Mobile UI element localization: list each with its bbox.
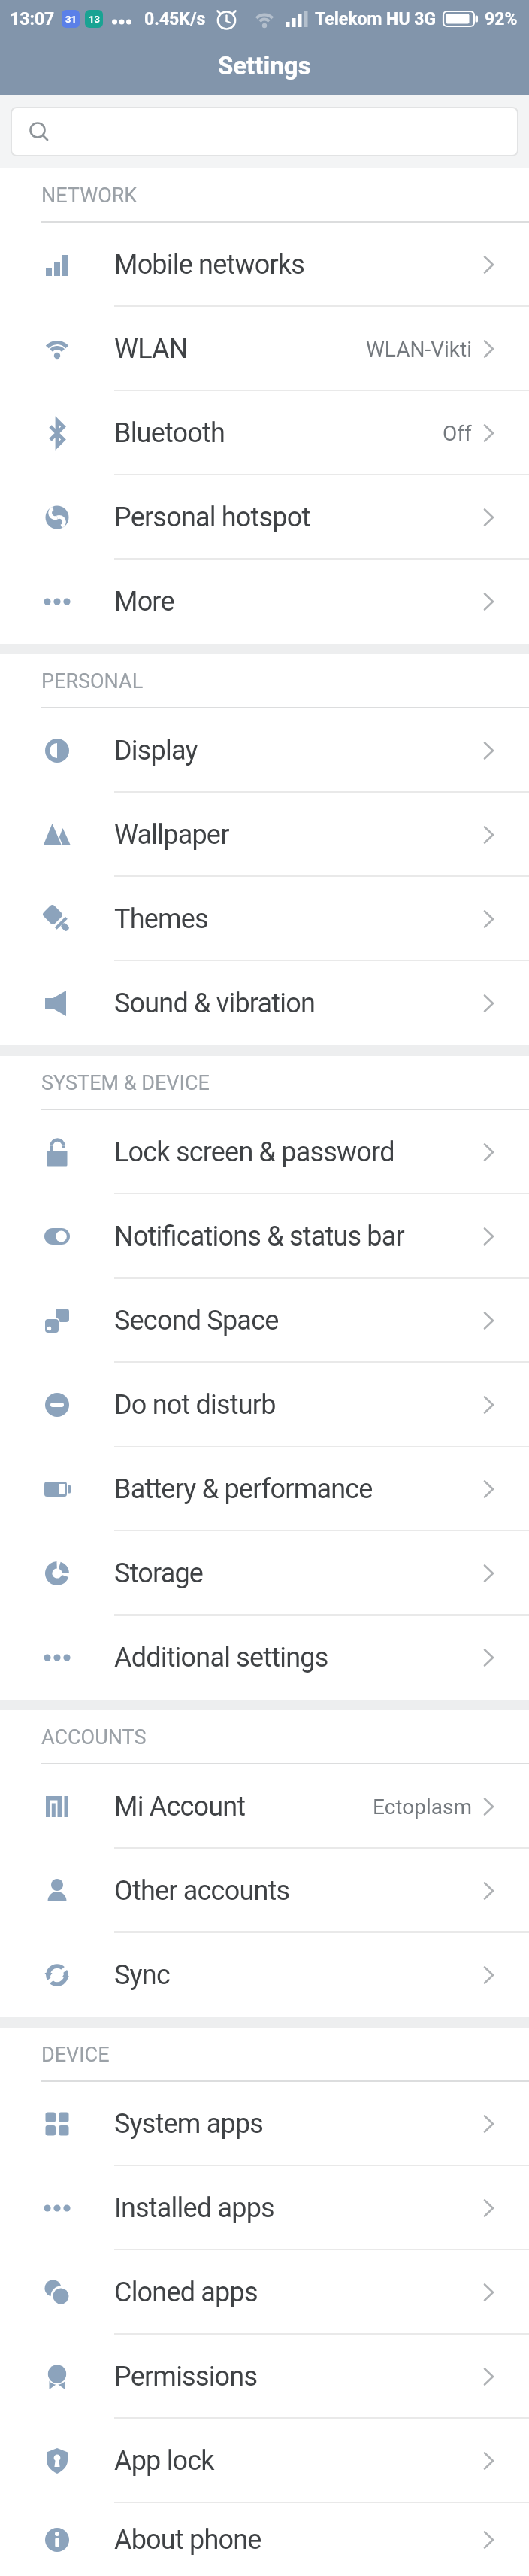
button[interactable]: Storage [0, 1531, 529, 1616]
staticText: Storage [114, 1558, 204, 1589]
button[interactable]: Wallpaper [0, 793, 529, 877]
button[interactable]: System apps [0, 2082, 529, 2166]
staticText: WLAN-Vikti [366, 337, 472, 362]
staticText: System apps [114, 2108, 264, 2140]
staticText: Other accounts [114, 1875, 290, 1907]
button[interactable]: Mobile networks [0, 223, 529, 307]
button[interactable]: Sync [0, 1933, 529, 2017]
button[interactable]: Installed apps [0, 2166, 529, 2250]
button[interactable]: About phone [0, 2503, 529, 2576]
staticText: Lock screen & password [114, 1136, 394, 1168]
staticText: Off [443, 421, 472, 446]
button[interactable]: Mi Account [0, 1764, 529, 1849]
staticText: Telekom HU 3G [315, 9, 437, 29]
staticText: Sync [114, 1959, 170, 1991]
button[interactable]: Additional settings [0, 1616, 529, 1700]
button[interactable]: Second Space [0, 1279, 529, 1363]
staticText: Second Space [114, 1305, 279, 1337]
staticText: Notifications & status bar [114, 1221, 404, 1252]
button[interactable]: WLAN [0, 307, 529, 391]
button[interactable]: Sound & vibration [0, 961, 529, 1045]
staticText: PERSONAL [41, 669, 144, 693]
button[interactable]: Battery & performance [0, 1447, 529, 1531]
staticText: 92% [485, 9, 518, 29]
staticText: Themes [114, 903, 208, 935]
button[interactable]: Cloned apps [0, 2250, 529, 2335]
staticText: WLAN [114, 333, 188, 365]
staticText: Sound & vibration [114, 988, 316, 1019]
staticText: Permissions [114, 2361, 258, 2392]
button[interactable]: Permissions [0, 2335, 529, 2419]
button[interactable]: More [0, 560, 529, 644]
button[interactable]: Lock screen & password [0, 1110, 529, 1194]
button[interactable]: Themes [0, 877, 529, 961]
staticText: Settings [218, 51, 311, 80]
staticText: SYSTEM & DEVICE [41, 1071, 210, 1095]
button[interactable]: Do not disturb [0, 1363, 529, 1447]
staticText: Do not disturb [114, 1389, 276, 1421]
staticText: About phone [114, 2524, 261, 2556]
staticText: ACCOUNTS [41, 1725, 147, 1749]
staticText: Battery & performance [114, 1473, 373, 1505]
staticText: Personal hotspot [114, 502, 310, 533]
staticText: DEVICE [41, 2043, 110, 2067]
button[interactable]: Personal hotspot [0, 475, 529, 560]
staticText: 13 [89, 14, 100, 25]
staticText: 31 [65, 14, 77, 25]
staticText: Display [114, 735, 198, 766]
staticText: Mobile networks [114, 249, 305, 281]
button[interactable]: Display [0, 708, 529, 793]
button[interactable]: App lock [0, 2419, 529, 2503]
staticText: Cloned apps [114, 2277, 258, 2308]
staticText: Additional settings [114, 1642, 328, 1673]
staticText: Bluetooth [114, 417, 225, 449]
button[interactable]: Other accounts [0, 1849, 529, 1933]
staticText: Mi Account [114, 1791, 246, 1822]
button[interactable]: Bluetooth [0, 391, 529, 475]
button[interactable] [11, 107, 518, 156]
staticText: Ectoplasm [373, 1795, 472, 1819]
staticText: NETWORK [41, 184, 138, 208]
button[interactable]: Notifications & status bar [0, 1194, 529, 1279]
staticText: 13:07 [10, 9, 55, 29]
staticText: Wallpaper [114, 819, 229, 851]
staticText: Installed apps [114, 2192, 274, 2224]
staticText: App lock [114, 2445, 214, 2477]
staticText: More [114, 586, 174, 617]
staticText: 0.45K/s [144, 9, 206, 29]
